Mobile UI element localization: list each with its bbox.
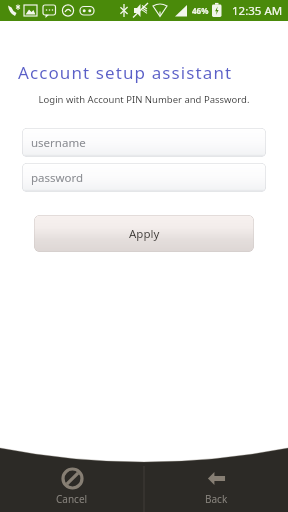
button[interactable]: Apply: [34, 215, 254, 252]
staticText: username: [31, 135, 86, 151]
staticText: 12:35 AM: [232, 3, 283, 19]
staticText: Account setup assistant: [18, 61, 288, 84]
button[interactable]: Cancel: [0, 462, 144, 512]
staticText: Cancel: [56, 492, 88, 506]
staticText: password: [31, 170, 84, 186]
button[interactable]: Back: [144, 462, 288, 512]
staticText: 46%: [192, 5, 209, 16]
staticText: Apply: [129, 226, 160, 242]
staticText: Login with Account PIN Number and Passwo…: [0, 93, 288, 106]
button[interactable]: password: [22, 163, 266, 192]
staticText: Back: [205, 492, 228, 506]
button[interactable]: username: [22, 128, 266, 157]
